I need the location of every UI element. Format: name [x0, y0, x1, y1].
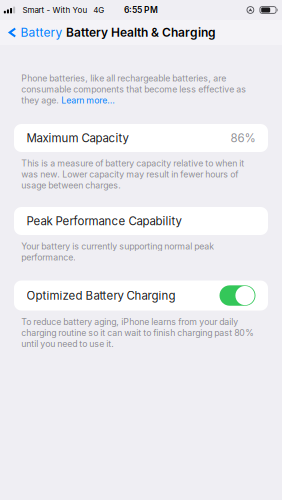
button[interactable]: Maximum Capacity [0, 124, 282, 152]
staticText: Maximum Capacity [26, 131, 128, 145]
staticText: consumable components that become less e… [21, 84, 246, 95]
staticText: Battery Health & Charging [66, 25, 216, 40]
button[interactable]: Peak Performance Capability [0, 207, 282, 235]
staticText: Learn more… [61, 95, 115, 105]
staticText: This is a measure of battery capacity re… [21, 158, 244, 190]
staticText: Smart - With You [23, 5, 88, 15]
staticText: 6:55 PM [124, 5, 158, 15]
staticText: Battery [20, 25, 62, 40]
button[interactable]: Battery [0, 20, 68, 45]
staticText: Your battery is currently supporting nor… [21, 241, 214, 262]
staticText: Peak Performance Capability [26, 214, 181, 228]
button[interactable]: Optimized Battery Charging toggle [219, 285, 255, 306]
staticText: To reduce battery aging, iPhone learns f… [21, 316, 254, 349]
staticText: 86% [230, 131, 255, 145]
staticText: Optimized Battery Charging [26, 289, 175, 302]
staticText: Phone batteries, like all rechargeable b… [21, 73, 226, 84]
staticText: they age. [21, 95, 61, 105]
staticText: 4G [93, 5, 104, 15]
button[interactable]: Learn more… [61, 95, 115, 105]
